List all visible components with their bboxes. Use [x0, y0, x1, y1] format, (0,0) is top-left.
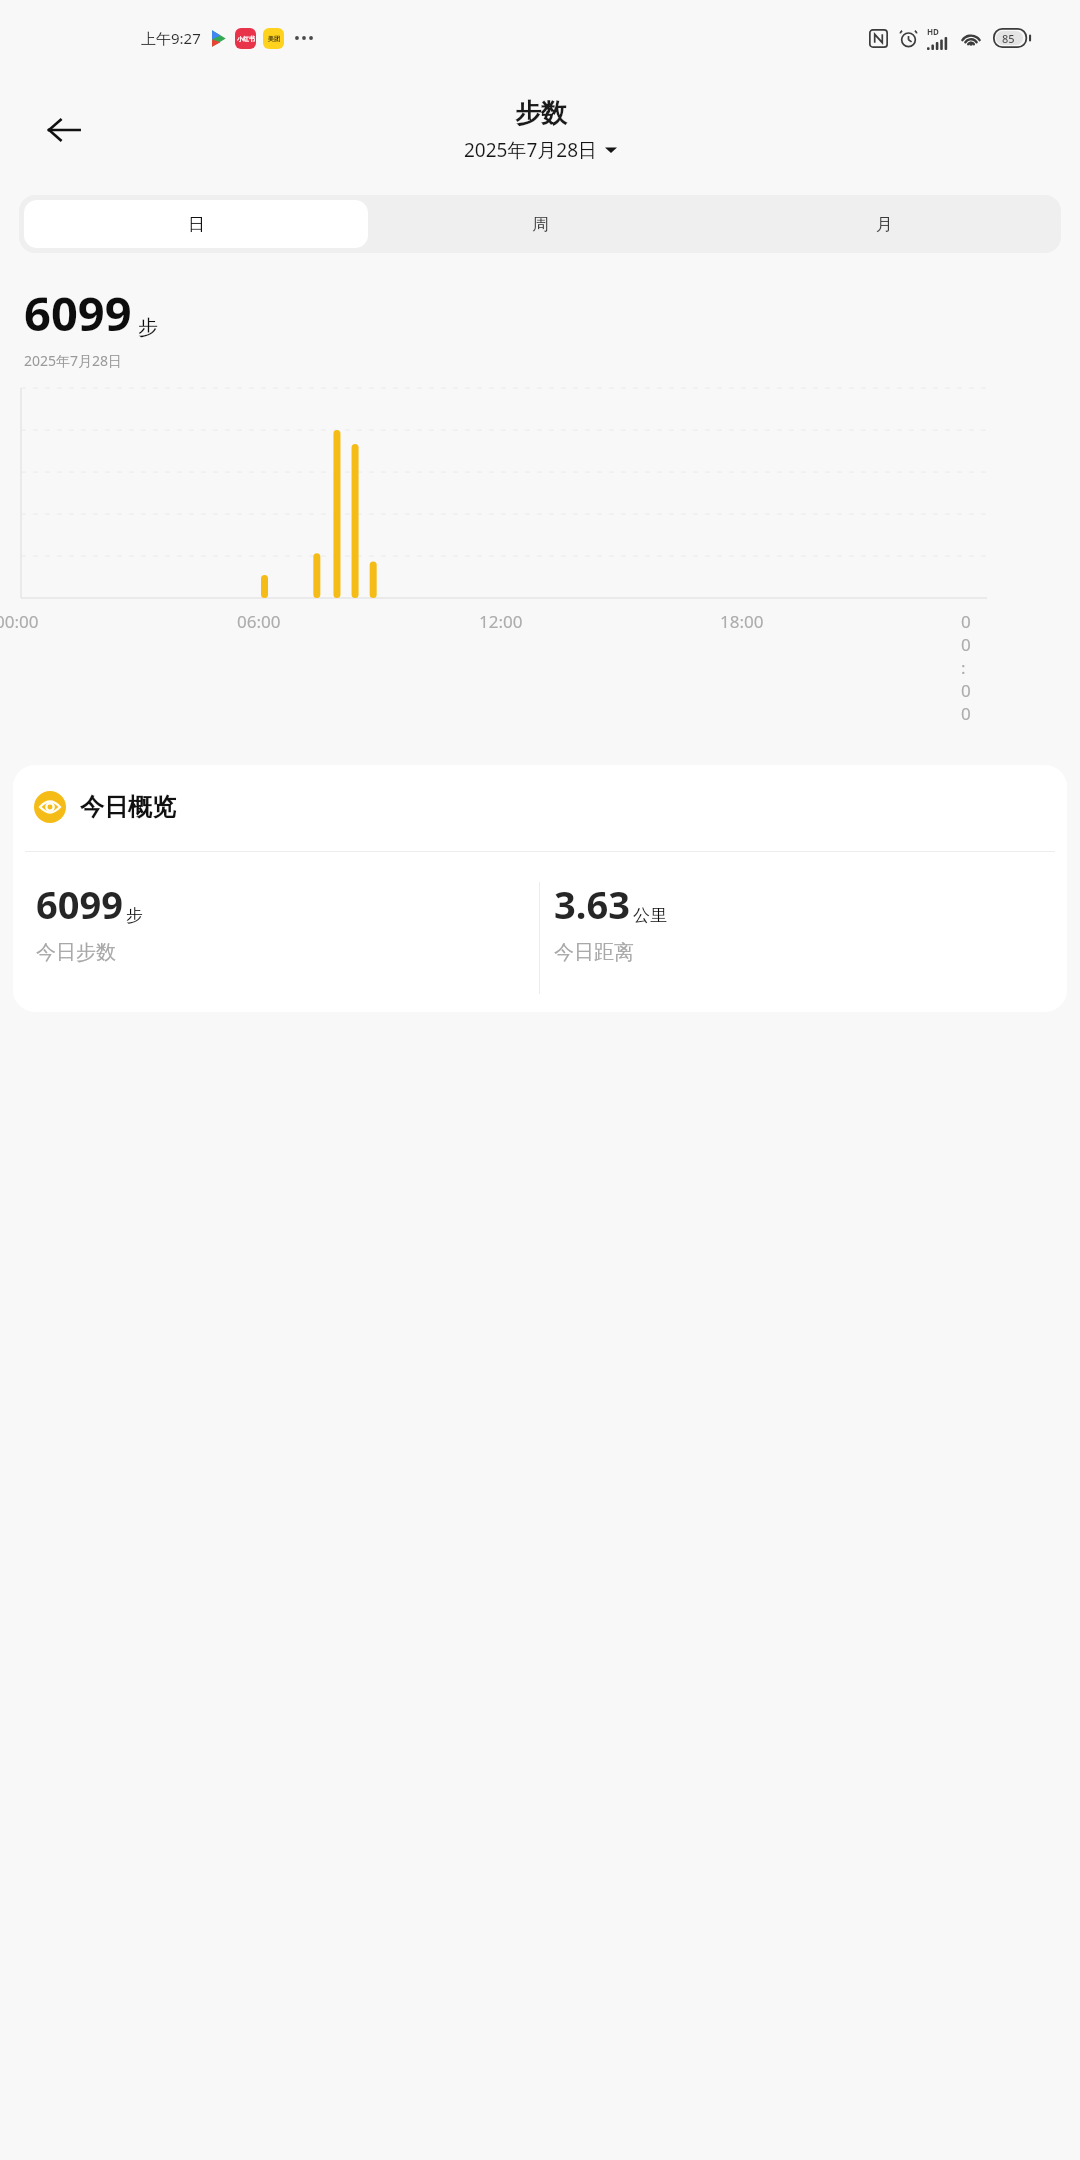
staticText: 月 [876, 214, 893, 235]
button[interactable]: 日 [24, 200, 368, 248]
staticText: 2025年7月28日 [24, 351, 123, 370]
staticText: 00:00 [0, 610, 39, 633]
staticText: 步 [138, 315, 158, 340]
staticText: 公里 [633, 905, 667, 926]
button[interactable]: 返回 [36, 102, 92, 158]
staticText: 今日概览 [80, 792, 176, 822]
staticText: 周 [532, 214, 549, 235]
button[interactable]: 周 [368, 200, 712, 248]
staticText: 3.63 [554, 878, 630, 930]
staticText: 上午9:27 [141, 28, 201, 48]
staticText: 步数 [515, 97, 567, 130]
staticText: 小红书 [237, 35, 255, 43]
staticText: 今日距离 [554, 940, 634, 965]
staticText: 日 [188, 214, 205, 235]
staticText: 美团 [268, 35, 280, 43]
staticText: 6099 [36, 878, 123, 930]
staticText: 2025年7月28日 [464, 137, 598, 163]
button[interactable]: 今日概览 [13, 765, 1067, 1012]
staticText: 6099 [24, 281, 132, 345]
staticText: HD [927, 26, 939, 37]
button[interactable]: 2025年7月28日 [464, 137, 617, 163]
staticText: 今日步数 [36, 940, 116, 965]
button[interactable]: 月 [712, 200, 1056, 248]
staticText: 06:00 [237, 610, 281, 633]
staticText: 12:00 [479, 610, 523, 633]
staticText: 18:00 [720, 610, 764, 633]
staticText: 85 [1002, 31, 1015, 46]
staticText: 步 [126, 905, 143, 926]
